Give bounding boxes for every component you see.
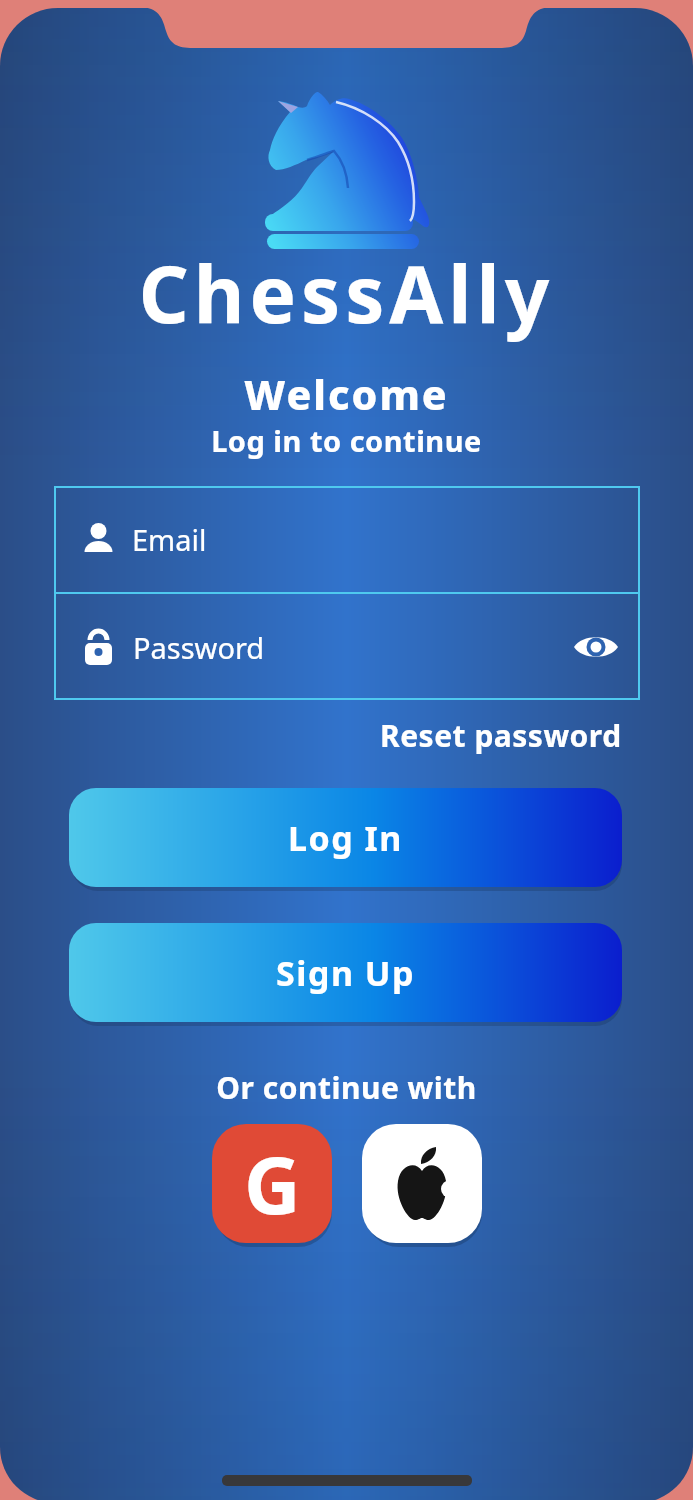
button[interactable]: Reset password xyxy=(0,715,622,756)
button[interactable]: Password xyxy=(54,594,640,700)
button[interactable]: G xyxy=(212,1124,332,1243)
staticText: ChessAlly xyxy=(0,240,693,346)
staticText: Email xyxy=(132,520,207,559)
staticText: Welcome xyxy=(0,366,693,422)
staticText: Log In xyxy=(288,815,403,861)
staticText: Log in to continue xyxy=(0,421,693,460)
button[interactable]: Email xyxy=(54,486,640,592)
staticText: Password xyxy=(133,628,265,667)
button[interactable]: Log In xyxy=(69,788,622,887)
staticText: G xyxy=(244,1131,301,1237)
staticText: Reset password xyxy=(380,715,622,756)
staticText: Sign Up xyxy=(276,950,416,996)
button[interactable] xyxy=(362,1124,482,1243)
staticText: Or continue with xyxy=(0,1067,693,1108)
button[interactable]: Sign Up xyxy=(69,923,622,1022)
